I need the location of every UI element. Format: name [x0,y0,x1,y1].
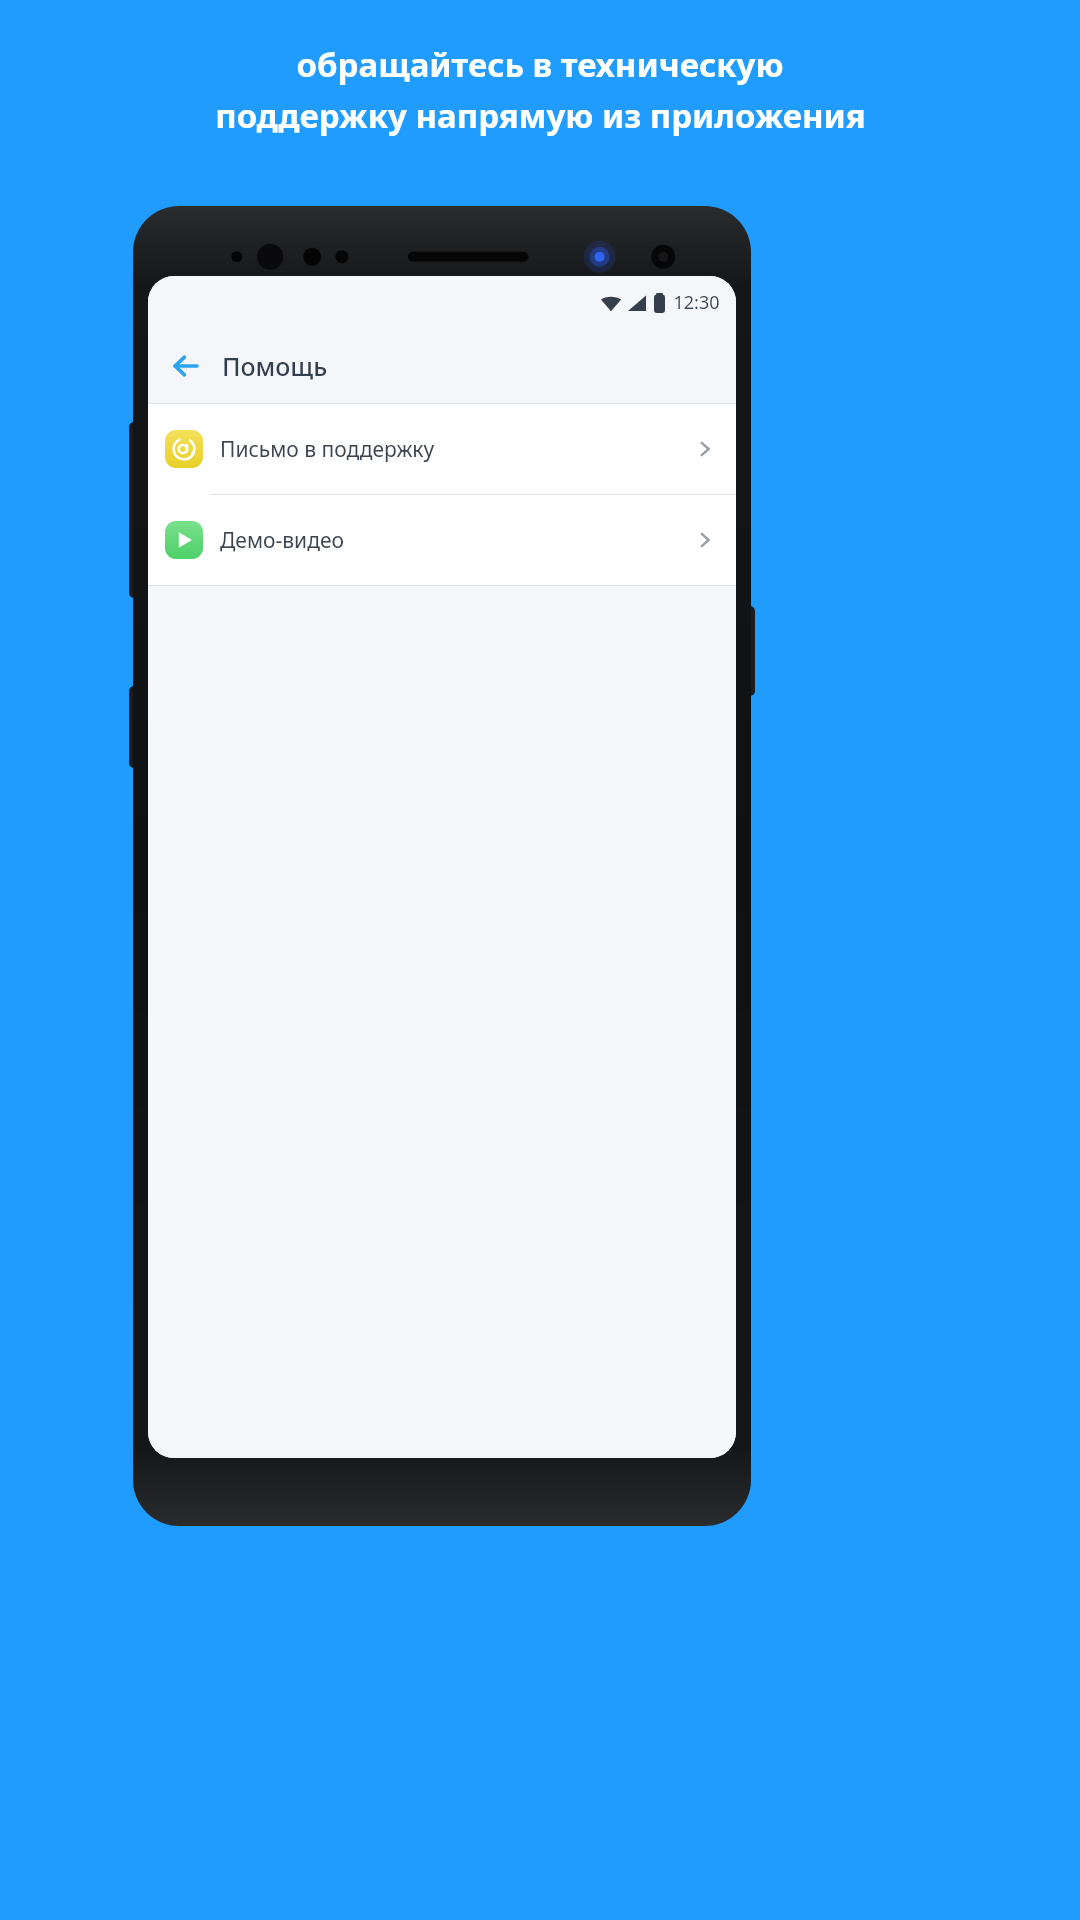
staticText: 12:30 [673,290,720,315]
button[interactable]: Демо-видео [148,495,736,585]
staticText: поддержку напрямую из приложения [215,93,866,138]
staticText: обращайтесь в техническую [296,42,784,87]
staticText: Помощь [222,349,328,383]
button[interactable]: Назад [162,342,210,390]
button[interactable]: Письмо в поддержку [148,404,736,494]
staticText: Письмо в поддержку [220,435,696,464]
staticText: Демо-видео [220,526,696,555]
